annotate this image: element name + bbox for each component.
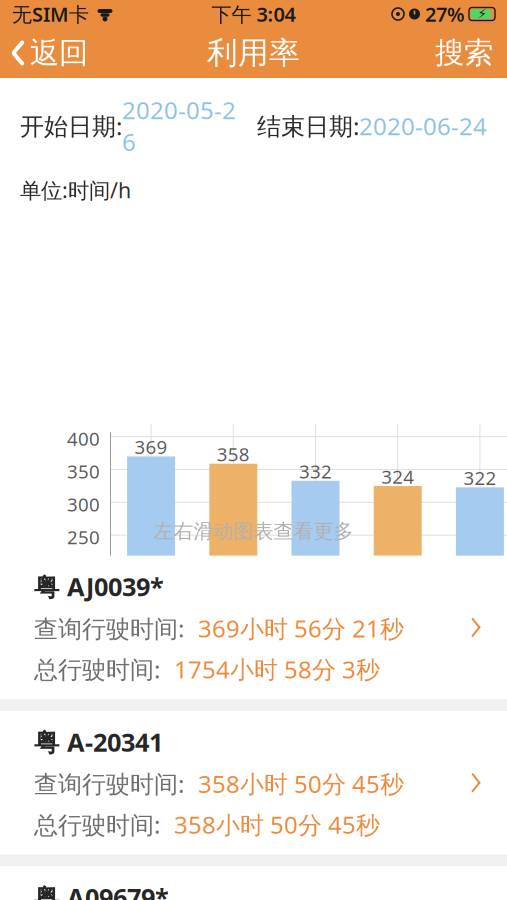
staticText: 358小时 50分 45秒 (174, 808, 380, 840)
staticText: 粤 A-20341 (34, 725, 163, 759)
staticText: 总行驶时间: (34, 808, 160, 840)
staticText: ⚡︎ (477, 6, 486, 21)
staticText: 粤 A09680* (437, 707, 507, 728)
staticText: 粤 A09679* (34, 880, 169, 900)
staticText: 0 (89, 689, 100, 714)
staticText: 332 (299, 459, 332, 484)
staticText: 结束日期: (257, 110, 359, 142)
staticText: 搜索 (435, 35, 493, 71)
staticText: 单位:时间/h (20, 176, 131, 204)
staticText: 369小时 56分 21秒 (198, 612, 404, 644)
button[interactable]: 返回 (0, 31, 98, 75)
staticText: 200 (67, 558, 100, 582)
staticText: 1754小时 58分 3秒 (174, 653, 380, 685)
staticText: 返回 (30, 35, 88, 71)
staticText: 粤 A-20341 (193, 707, 274, 728)
staticText: 300 (67, 492, 100, 517)
staticText: 27% (425, 1, 465, 27)
staticText: 粤 AJ0039* (34, 570, 164, 603)
staticText: 350 (67, 459, 100, 484)
staticText: 150 (67, 590, 100, 615)
staticText: 下午 3:04 (211, 1, 295, 27)
staticText: 查询行驶时间: (34, 612, 184, 644)
staticText: 400 (67, 426, 100, 451)
staticText: 358小时 50分 45秒 (198, 768, 404, 800)
staticText: 利用率 (207, 34, 300, 72)
staticText: 100 (67, 623, 100, 648)
staticText: 粤 AJ0039* (111, 707, 192, 728)
staticText: 2020-06-24 (359, 110, 487, 142)
staticText: 250 (67, 525, 100, 549)
button[interactable]: 粤 A09679* (0, 866, 507, 900)
button[interactable]: 搜索 (421, 31, 507, 75)
button[interactable]: 粤 A-20341 (0, 711, 507, 854)
staticText: 左右滑动图表查看更多 (153, 519, 353, 544)
staticText: 粤 A09679* (273, 707, 358, 728)
staticText: 358 (217, 442, 250, 466)
staticText: 322 (463, 465, 496, 490)
staticText: 总行驶时间: (34, 653, 160, 685)
staticText: 369 (135, 434, 168, 459)
staticText: 无SIM卡 (12, 1, 89, 27)
staticText: 50 (78, 656, 100, 681)
staticText: 开始日期: (20, 110, 122, 142)
staticText: 324 (381, 464, 414, 489)
staticText: 粤 A09684* (355, 707, 440, 728)
staticText: 查询行驶时间: (34, 768, 184, 800)
staticText: 2020-05-26 (122, 94, 236, 158)
button[interactable]: 粤 AJ0039* (0, 556, 507, 699)
